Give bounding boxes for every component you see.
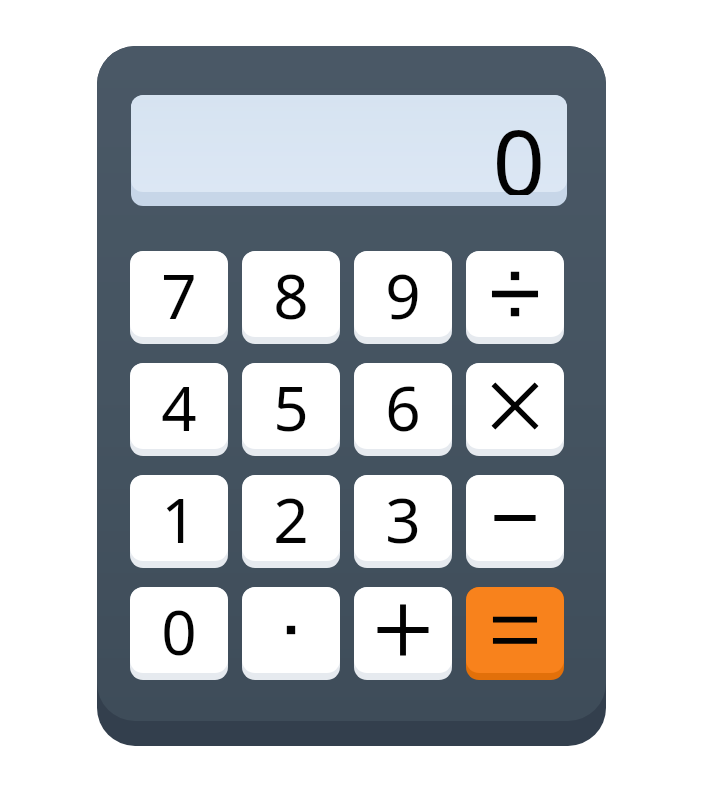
button[interactable]: 0 bbox=[130, 587, 228, 680]
staticText: 5 bbox=[273, 365, 309, 449]
button[interactable]: 6 bbox=[354, 363, 452, 456]
staticText: 2 bbox=[273, 477, 309, 561]
button[interactable]: Equals bbox=[466, 587, 564, 680]
staticText: 3 bbox=[385, 477, 421, 561]
button[interactable]: Subtract bbox=[466, 475, 564, 568]
button[interactable]: Add bbox=[354, 587, 452, 680]
button[interactable]: 7 bbox=[130, 251, 228, 344]
staticText: 4 bbox=[161, 365, 197, 449]
button[interactable]: Decimal point bbox=[242, 587, 340, 680]
staticText: 9 bbox=[385, 253, 421, 337]
button[interactable]: Divide bbox=[466, 251, 564, 344]
button[interactable]: 1 bbox=[130, 475, 228, 568]
button[interactable]: 8 bbox=[242, 251, 340, 344]
button[interactable]: 5 bbox=[242, 363, 340, 456]
button[interactable]: Multiply bbox=[466, 363, 564, 456]
staticText: 7 bbox=[161, 253, 197, 337]
button[interactable]: 9 bbox=[354, 251, 452, 344]
button[interactable]: 0 bbox=[131, 95, 567, 206]
button[interactable]: 4 bbox=[130, 363, 228, 456]
staticText: 0 bbox=[161, 589, 197, 673]
staticText: 0 bbox=[131, 98, 545, 195]
button[interactable]: 3 bbox=[354, 475, 452, 568]
button[interactable]: 2 bbox=[242, 475, 340, 568]
staticText: 1 bbox=[161, 477, 197, 561]
staticText: 8 bbox=[273, 253, 309, 337]
staticText: 6 bbox=[385, 365, 421, 449]
